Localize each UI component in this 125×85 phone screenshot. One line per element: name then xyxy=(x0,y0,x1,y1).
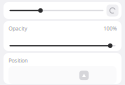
staticText: Opacity xyxy=(8,25,27,32)
staticText: Position xyxy=(8,57,27,64)
staticText: 100% xyxy=(103,25,116,32)
button[interactable]: Reset xyxy=(106,4,118,16)
button[interactable]: Top centre position xyxy=(79,71,89,80)
